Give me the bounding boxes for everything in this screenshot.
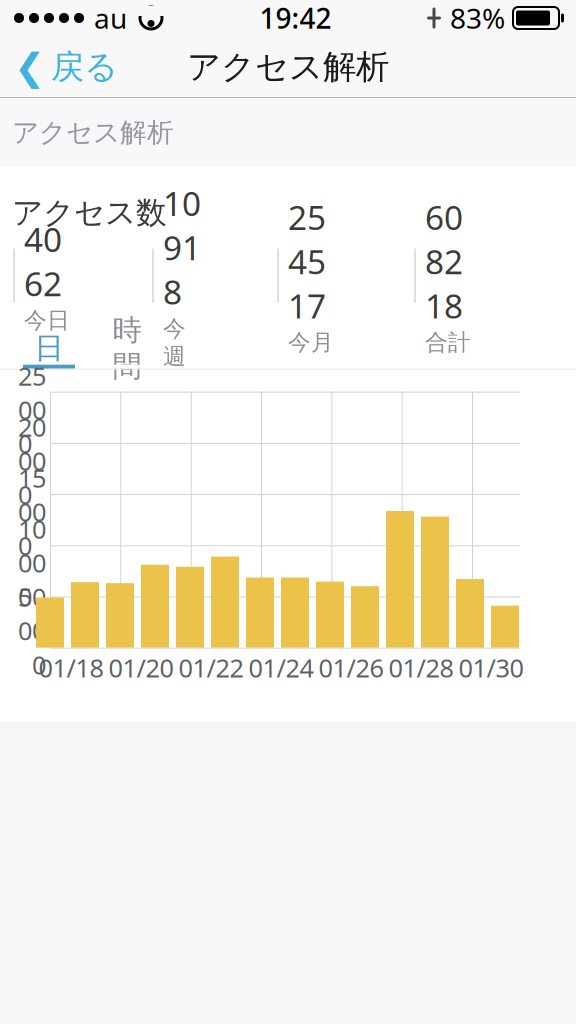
staticText: アクセス数 (12, 194, 167, 232)
staticText: 01/26 (318, 651, 383, 684)
staticText: 5000 (18, 580, 46, 647)
staticText: 今週 (163, 315, 186, 370)
staticText: 0 (32, 648, 46, 681)
staticText: 83% (450, 0, 505, 37)
staticText: 01/30 (458, 651, 523, 684)
staticText: 今日 (24, 306, 70, 334)
staticText: 19:42 (259, 0, 331, 37)
button[interactable]: 時間 (104, 332, 150, 369)
button[interactable]: ❮ (0, 36, 136, 98)
staticText: 01/28 (388, 651, 453, 684)
staticText: 254517 (288, 195, 326, 328)
staticText: 時間 (112, 312, 141, 384)
staticText: アクセス解析 (187, 46, 389, 87)
staticText: 15000 (18, 461, 46, 562)
staticText: 合計 (425, 329, 471, 356)
staticText: ❮ (14, 46, 45, 88)
staticText: 25000 (18, 359, 46, 460)
staticText: 01/20 (108, 651, 173, 684)
staticText: アクセス解析 (12, 116, 174, 149)
staticText: 今月 (288, 329, 334, 356)
staticText: 10918 (163, 181, 201, 314)
staticText: 10000 (18, 512, 46, 613)
staticText: 日 (34, 330, 63, 366)
staticText: 608218 (425, 195, 463, 328)
staticText: 4062 (24, 217, 62, 305)
staticText: 01/18 (38, 651, 103, 684)
staticText: 戻る (51, 46, 118, 87)
staticText: 01/24 (248, 651, 313, 684)
staticText: 01/22 (178, 651, 243, 684)
staticText: au (94, 0, 127, 37)
staticText: 20000 (18, 410, 46, 511)
button[interactable]: 日 (23, 332, 75, 369)
